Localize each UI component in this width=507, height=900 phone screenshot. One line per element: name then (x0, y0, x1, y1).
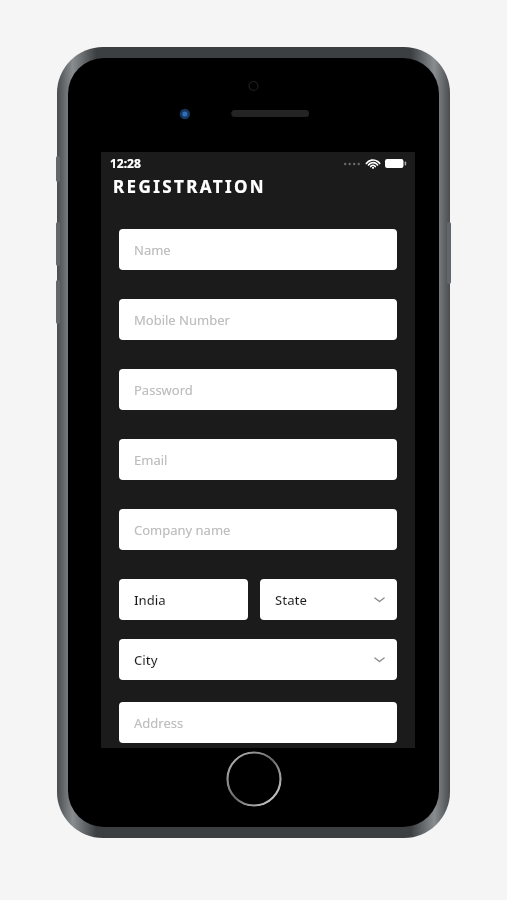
staticText: 12:28 (110, 155, 141, 171)
staticText: REGISTRATION (113, 175, 266, 198)
button[interactable]: Mobile Number (119, 299, 397, 340)
staticText: Address (134, 714, 184, 732)
staticText: India (134, 591, 166, 609)
button[interactable]: Password (119, 369, 397, 410)
staticText: Name (134, 241, 171, 259)
button[interactable]: City (119, 639, 397, 680)
button[interactable]: State (260, 579, 397, 620)
button[interactable]: Home (226, 751, 282, 807)
staticText: Company name (134, 521, 231, 539)
staticText: State (275, 591, 308, 609)
staticText: Mobile Number (134, 311, 230, 329)
button[interactable]: Address (119, 702, 397, 743)
staticText: Password (134, 381, 193, 399)
staticText: Email (134, 451, 168, 469)
button[interactable]: Company name (119, 509, 397, 550)
button[interactable]: Email (119, 439, 397, 480)
button[interactable]: Name (119, 229, 397, 270)
button[interactable]: India (119, 579, 248, 620)
staticText: City (134, 651, 158, 669)
